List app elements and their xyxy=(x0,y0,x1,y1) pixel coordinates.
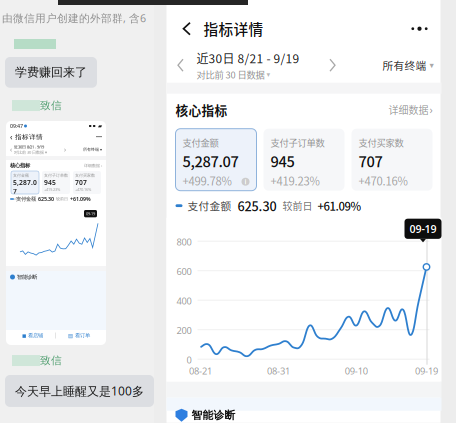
staticText: ‹ xyxy=(10,145,12,154)
staticText: 09-19 xyxy=(86,211,95,216)
staticText: 支付金额 xyxy=(182,136,218,149)
staticText: 学费赚回来了 xyxy=(15,65,87,80)
staticText: 近30日 8/21 - 9/19 xyxy=(196,49,299,67)
staticText: 由微信用户创建的外部群, 含6 xyxy=(2,11,146,25)
staticText: 智能诊断 xyxy=(17,274,37,280)
button[interactable]: Next period xyxy=(323,54,339,76)
staticText: +419.23% xyxy=(270,172,319,189)
staticText: +499.78% xyxy=(13,196,29,201)
staticText: › xyxy=(64,145,66,154)
staticText: +470.16% xyxy=(75,187,91,192)
staticText: 支付金额 xyxy=(187,198,231,213)
staticText: ••• xyxy=(96,133,102,141)
staticText: 945 xyxy=(44,178,56,187)
button[interactable]: 支付买家数 xyxy=(351,129,432,191)
button[interactable]: 近30日 8/21 - 9/19 xyxy=(189,49,299,81)
staticText: +499.78% xyxy=(182,172,231,189)
staticText: 200 xyxy=(176,324,191,337)
staticText: ◼ 看店铺 xyxy=(22,332,43,339)
staticText: 09-19 xyxy=(415,365,438,377)
staticText: i xyxy=(244,177,246,186)
staticText: 支付金额 xyxy=(16,196,36,202)
staticText: 945 xyxy=(270,150,294,171)
staticText: 09:47 xyxy=(10,122,23,130)
staticText: 支付子订单数 xyxy=(44,173,68,178)
staticText: +61.09% xyxy=(70,195,91,203)
staticText: 支付金额 xyxy=(13,173,29,178)
button[interactable]: 支付金额 xyxy=(175,129,256,191)
staticText: 800 xyxy=(176,236,191,248)
staticText: 所有终端 ▾ xyxy=(83,147,102,152)
staticText: 支付子订单数 xyxy=(270,136,324,149)
staticText: ▾ xyxy=(266,70,270,79)
staticText: 支付买家数 xyxy=(75,173,95,178)
staticText: 08-31 xyxy=(267,365,290,377)
staticText: 智能诊断 xyxy=(191,409,235,422)
staticText: 指标详情 xyxy=(203,18,263,39)
staticText: 对比前 30 日数据 ▾ xyxy=(14,149,47,155)
staticText: 400 xyxy=(176,295,191,307)
staticText: ▤ 看订单 xyxy=(68,332,90,339)
staticText: 较前日 xyxy=(56,196,68,201)
staticText: 详细数据 xyxy=(388,102,428,117)
staticText: 0 xyxy=(186,354,191,366)
button[interactable]: 详细数据 xyxy=(388,102,432,117)
button[interactable]: More options xyxy=(404,17,434,41)
button[interactable]: Back xyxy=(177,17,196,41)
staticText: 致信 xyxy=(40,99,62,112)
staticText: ‹ xyxy=(10,132,12,142)
staticText: +470.16% xyxy=(358,172,407,189)
staticText: ⏹ ⏹ ▰ xyxy=(89,123,102,129)
staticText: 09-19 xyxy=(409,222,436,236)
staticText: 09-10 xyxy=(345,365,368,377)
staticText: 详细数据 › xyxy=(84,163,102,168)
staticText: 08-21 xyxy=(189,365,212,377)
button[interactable]: 所有终端 xyxy=(382,54,433,76)
staticText: +419.23% xyxy=(44,187,60,192)
staticText: 5,287.07 xyxy=(13,178,37,196)
staticText: 所有终端 xyxy=(382,57,426,73)
staticText: 对比前 30 日数据 xyxy=(196,68,264,81)
staticText: 707 xyxy=(358,150,382,171)
staticText: 近30日 8/21 - 9/19 xyxy=(14,144,44,149)
staticText: 600 xyxy=(176,265,191,278)
button[interactable]: Previous period xyxy=(173,54,189,76)
staticText: 支付买家数 xyxy=(358,136,403,149)
staticText: 指标详情 xyxy=(15,133,43,141)
staticText: 较前日 xyxy=(282,198,312,213)
staticText: +61.09% xyxy=(317,197,361,214)
button[interactable]: 支付子订单数 xyxy=(263,129,344,191)
staticText: 致信 xyxy=(40,354,62,367)
staticText: ▾ xyxy=(429,60,433,70)
staticText: 核心指标 xyxy=(10,162,30,169)
staticText: 核心指标 xyxy=(175,100,227,119)
staticText: 5,287.07 xyxy=(182,150,238,171)
staticText: 今天早上睡醒又是100多 xyxy=(15,383,144,399)
staticText: 625.30 xyxy=(38,195,54,203)
staticText: › xyxy=(429,102,432,117)
staticText: 625.30 xyxy=(237,196,276,215)
staticText: 707 xyxy=(75,178,87,187)
